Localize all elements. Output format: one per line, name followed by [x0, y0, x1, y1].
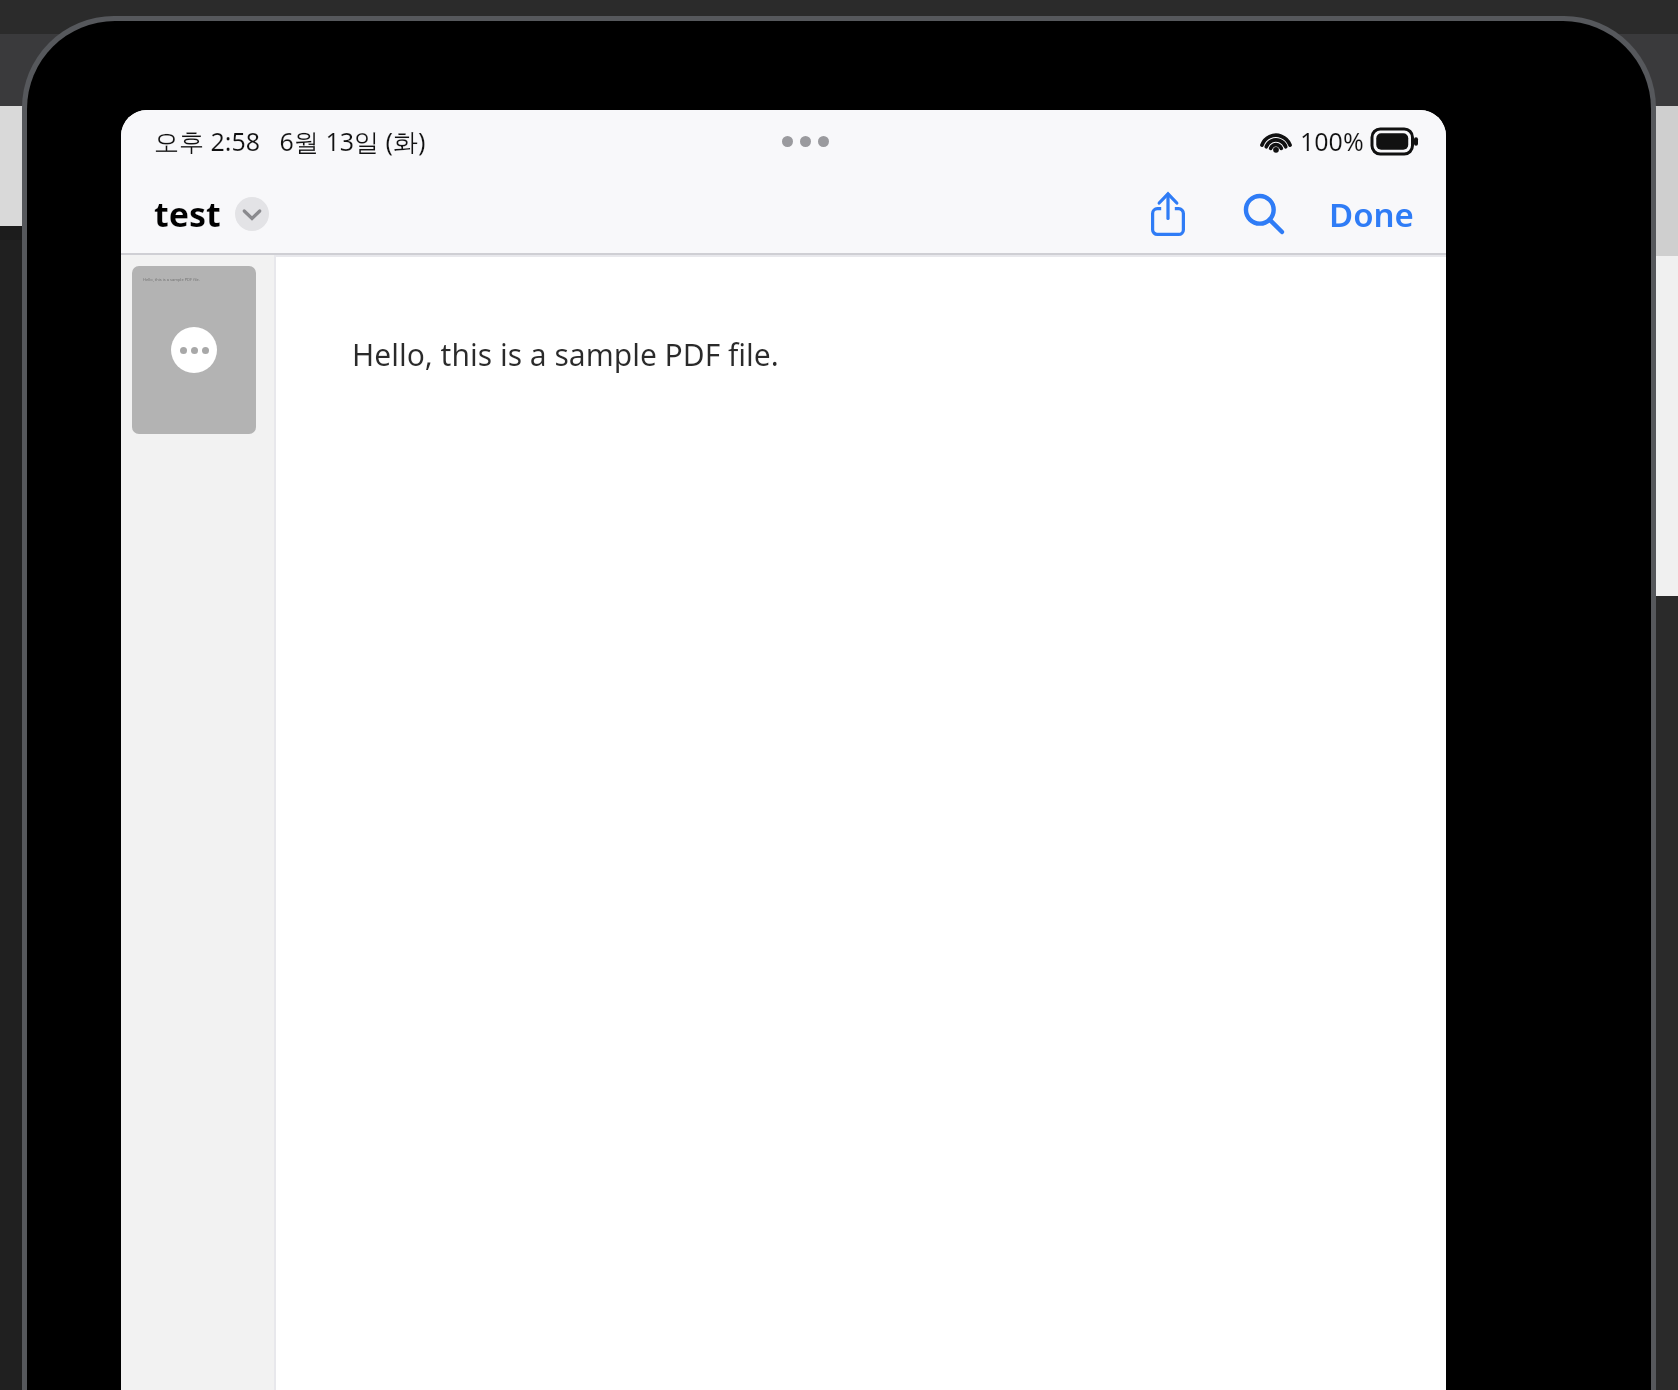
button[interactable]: Hello, this is a sample PDF file. [132, 266, 256, 434]
button[interactable]: Share [1135, 181, 1201, 247]
staticText: 오후 2:58 6월 13일 (화) [154, 124, 426, 158]
staticText: 100% [1300, 124, 1364, 158]
staticText: Hello, this is a sample PDF file. [352, 334, 779, 375]
button[interactable]: Done [1321, 184, 1422, 245]
staticText: test [154, 191, 221, 237]
staticText: Done [1329, 192, 1414, 237]
staticText: Hello, this is a sample PDF file. [143, 277, 200, 282]
button[interactable]: test [154, 191, 269, 237]
button[interactable]: Search [1231, 181, 1297, 247]
